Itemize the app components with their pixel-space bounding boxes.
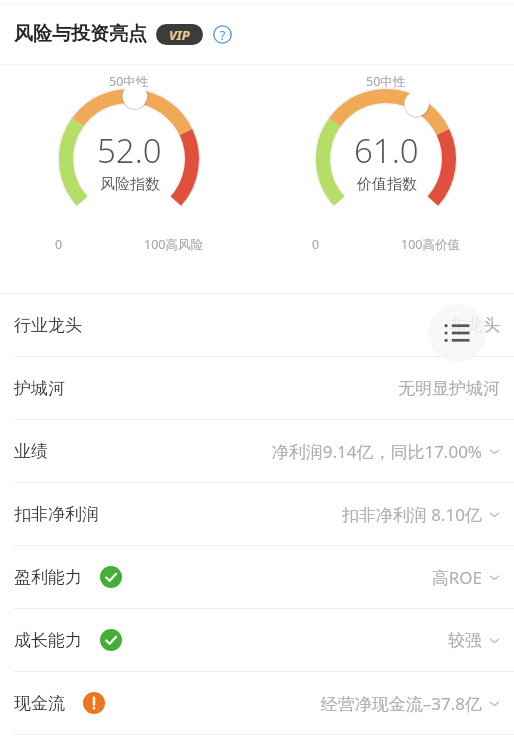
staticText: 价值指数 — [357, 175, 417, 194]
button[interactable]: 行业龙头 — [0, 294, 514, 356]
staticText: 较强 — [448, 630, 482, 651]
button[interactable]: 成长能力 — [0, 609, 514, 671]
staticText: ? — [220, 27, 226, 43]
staticText: 非龙头 — [449, 315, 500, 336]
staticText: 高ROE — [431, 566, 482, 589]
staticText: 0 — [312, 236, 320, 253]
staticText: 无明显护城河 — [398, 378, 500, 399]
staticText: 风险指数 — [100, 175, 160, 194]
staticText: 61.0 — [354, 128, 419, 173]
staticText: 0 — [55, 236, 63, 253]
button[interactable]: 扣非净利润 — [0, 483, 514, 545]
button[interactable]: 目录 — [428, 304, 486, 362]
staticText: 护城河 — [14, 378, 65, 399]
staticText: 扣非净利润 — [14, 504, 99, 525]
staticText: 50中性 — [366, 73, 406, 90]
staticText: 50中性 — [109, 73, 149, 90]
button[interactable]: 现金流 — [0, 672, 514, 734]
staticText: 100高价值 — [401, 236, 460, 253]
button[interactable]: VIP — [156, 24, 203, 45]
staticText: 现金流 — [14, 693, 65, 714]
staticText: 扣非净利润 8.10亿 — [341, 503, 482, 526]
staticText: 成长能力 — [14, 630, 82, 651]
staticText: 经营净现金流–37.8亿 — [320, 692, 482, 715]
staticText: 行业龙头 — [14, 315, 82, 336]
staticText: 盈利能力 — [14, 567, 82, 588]
button[interactable]: 业绩 — [0, 420, 514, 482]
staticText: 100高风险 — [144, 236, 203, 253]
button[interactable]: 帮助 — [213, 25, 232, 44]
staticText: 风险与投资亮点 — [14, 22, 147, 46]
staticText: 净利润9.14亿，同比17.00% — [271, 440, 482, 463]
staticText: 业绩 — [14, 441, 48, 462]
staticText: 52.0 — [97, 128, 162, 173]
button[interactable]: 护城河 — [0, 357, 514, 419]
button[interactable]: 盈利能力 — [0, 546, 514, 608]
staticText: VIP — [169, 26, 190, 44]
